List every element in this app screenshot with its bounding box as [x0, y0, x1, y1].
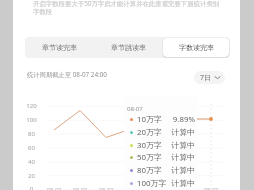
staticText: 计算中 [150, 140, 195, 150]
staticText: 40 [24, 158, 39, 166]
staticText: 100 [24, 116, 39, 124]
staticText: 章节读完率 [42, 43, 77, 52]
staticText: 20 [24, 172, 39, 180]
staticText: 10万字 [137, 114, 162, 125]
staticText: 计算中 [150, 165, 195, 175]
staticText: 100万字 [137, 178, 167, 189]
staticText: 50万字 [137, 152, 162, 163]
staticText: 9.89% [150, 114, 195, 125]
staticText: 08-07 [71, 186, 89, 190]
staticText: 计算中 [150, 152, 195, 162]
staticText: 08-07 [149, 186, 167, 190]
staticText: 开启字数段要大于50万字后才能计算并在此查看完整下届统计类别 [33, 0, 220, 8]
button[interactable]: 字数读完率 [163, 38, 229, 57]
staticText: 08-07 [202, 186, 220, 190]
staticText: 80 [24, 130, 39, 138]
button[interactable]: 章节读完率 [26, 38, 93, 57]
staticText: 字数段 [33, 8, 53, 16]
staticText: 08-07 [97, 186, 115, 190]
staticText: 统计周期截止至 08-07 24:00 [27, 70, 107, 79]
staticText: 20万字 [137, 127, 162, 138]
staticText: 120 [24, 102, 39, 110]
staticText: 字数读完率 [179, 43, 214, 52]
staticText: 08-07 [127, 105, 143, 113]
button[interactable]: 章节跳读率 [95, 38, 161, 57]
staticText: 80万字 [137, 165, 162, 176]
staticText: 计算中 [150, 178, 195, 188]
staticText: 08-07 [45, 186, 63, 190]
staticText: 0 [24, 185, 39, 190]
staticText: 计算中 [150, 127, 195, 137]
staticText: 30万字 [137, 140, 162, 151]
staticText: 60 [24, 144, 39, 152]
staticText: 7日 [200, 73, 212, 83]
button[interactable]: 7日 [194, 71, 225, 84]
staticText: 章节跳读率 [111, 43, 146, 52]
staticText: 08-07 [176, 186, 194, 190]
